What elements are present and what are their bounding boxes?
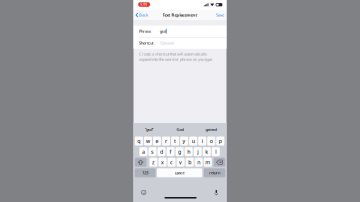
button[interactable]: l	[212, 147, 220, 156]
button[interactable]: a	[139, 147, 147, 156]
staticText: Text Replacement	[162, 12, 197, 18]
staticText: z	[152, 159, 155, 166]
button[interactable]: i	[198, 136, 206, 145]
button[interactable]: w	[144, 136, 152, 145]
button[interactable]: Dictation	[212, 188, 220, 196]
button[interactable]: Back	[133, 10, 148, 20]
staticText: o	[210, 137, 213, 145]
staticText: Create a shortcut that will automaticall…	[139, 51, 213, 62]
button[interactable]: f	[166, 147, 175, 156]
staticText: d	[160, 148, 163, 155]
button[interactable]: j	[194, 147, 202, 156]
staticText: Save	[216, 12, 224, 18]
staticText: j	[197, 148, 198, 155]
button[interactable]: Delete	[214, 158, 225, 167]
staticText: 123	[142, 170, 148, 175]
staticText: l	[215, 148, 216, 155]
button[interactable]: Shortcut	[133, 37, 226, 49]
staticText: k	[205, 148, 208, 155]
button[interactable]: Save	[216, 10, 226, 20]
button[interactable]: Shift	[135, 158, 146, 167]
button[interactable]: q	[135, 136, 143, 145]
staticText: n	[197, 159, 200, 166]
button[interactable]: return	[204, 168, 225, 177]
button[interactable]: u	[189, 136, 197, 145]
staticText: v	[179, 159, 182, 166]
staticText: e	[155, 137, 158, 145]
staticText: p	[219, 137, 222, 145]
button[interactable]: e	[153, 136, 161, 145]
button[interactable]: c	[167, 158, 176, 167]
staticText: Back	[139, 12, 148, 18]
button[interactable]: g	[176, 147, 184, 156]
button[interactable]: o	[207, 136, 215, 145]
staticText: “gsd”	[145, 127, 153, 132]
button[interactable]: p	[216, 136, 224, 145]
staticText: g	[178, 148, 181, 155]
button[interactable]: “gsd”	[133, 124, 164, 135]
button[interactable]: God	[164, 124, 195, 135]
staticText: r	[165, 137, 167, 145]
staticText: Shortcut	[139, 40, 153, 46]
staticText: x	[161, 159, 164, 166]
staticText: return	[209, 170, 220, 175]
staticText: w	[146, 137, 150, 145]
staticText: a	[142, 148, 145, 155]
button[interactable]: 123	[135, 168, 155, 177]
button[interactable]: t	[171, 136, 179, 145]
staticText: gsd	[160, 29, 166, 34]
staticText: f	[170, 148, 172, 155]
staticText: h	[187, 148, 190, 155]
staticText: m	[205, 159, 210, 166]
button[interactable]: n	[195, 158, 203, 167]
staticText: God	[176, 127, 183, 132]
button[interactable]: space	[157, 168, 202, 177]
button[interactable]: d	[157, 147, 165, 156]
staticText: q	[137, 137, 140, 145]
staticText: s	[151, 148, 154, 155]
staticText: i	[202, 137, 203, 145]
staticText: y	[183, 137, 186, 145]
button[interactable]: x	[158, 158, 166, 167]
button[interactable]: h	[185, 147, 193, 156]
staticText: b	[188, 159, 191, 166]
staticText: Phrase	[139, 29, 151, 34]
button[interactable]: Emoji	[140, 188, 148, 196]
button[interactable]: z	[149, 158, 157, 167]
staticText: c	[170, 159, 173, 166]
staticText: u	[192, 137, 195, 145]
button[interactable]: v	[177, 158, 185, 167]
staticText: gained	[205, 127, 216, 132]
button[interactable]: m	[204, 158, 212, 167]
staticText: t	[174, 137, 176, 145]
staticText: Optional	[160, 40, 174, 46]
button[interactable]: gained	[195, 124, 226, 135]
button[interactable]: r	[162, 136, 170, 145]
staticText: space	[175, 170, 185, 175]
button[interactable]: y	[180, 136, 188, 145]
button[interactable]: s	[148, 147, 156, 156]
staticText: 6:00	[141, 3, 148, 6]
button[interactable]: k	[203, 147, 211, 156]
button[interactable]: b	[186, 158, 194, 167]
button[interactable]: Phrase	[133, 25, 226, 37]
